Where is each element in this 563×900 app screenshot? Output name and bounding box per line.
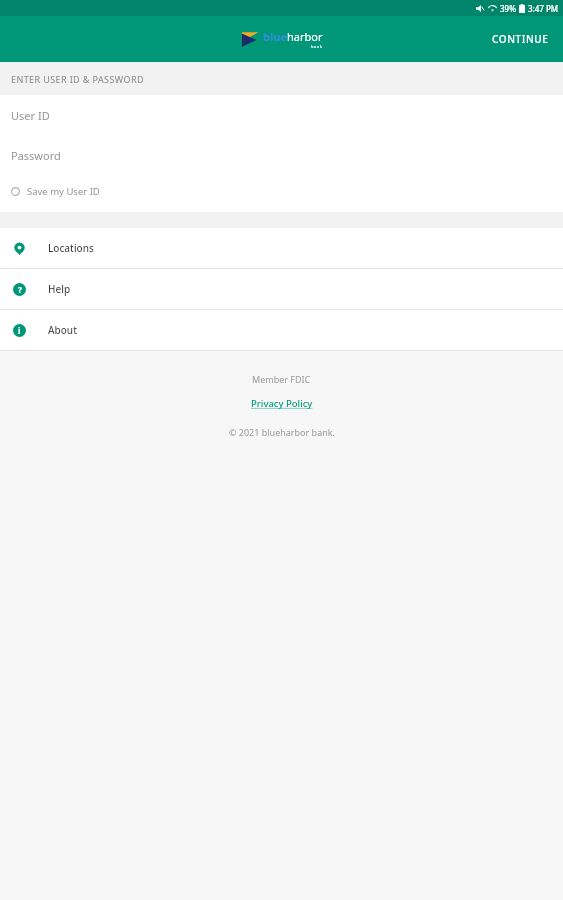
staticText: CONTINUE — [492, 32, 549, 46]
button[interactable]: Privacy Policy — [251, 397, 313, 410]
button[interactable]: Password — [0, 135, 563, 175]
staticText: Member FDIC — [252, 373, 311, 385]
staticText: About — [48, 323, 77, 337]
staticText: Privacy Policy — [251, 397, 313, 410]
staticText: Locations — [48, 241, 94, 255]
staticText: Help — [48, 282, 71, 296]
staticText: © 2021 blueharbor bank. — [229, 426, 335, 438]
staticText: blue — [263, 29, 287, 44]
staticText: Save my User ID — [27, 185, 100, 198]
button[interactable]: CONTINUE — [478, 20, 563, 58]
staticText: 3:47 PM — [528, 3, 559, 14]
button[interactable]: Save my User ID — [0, 175, 563, 212]
staticText: Password — [11, 148, 61, 163]
button[interactable]: ? — [0, 269, 563, 309]
staticText: ? — [18, 284, 22, 295]
button[interactable]: i — [0, 310, 563, 350]
staticText: i — [18, 325, 21, 336]
staticText: 39% — [500, 3, 516, 14]
staticText: harbor — [287, 29, 323, 44]
staticText: User ID — [11, 108, 50, 123]
button[interactable]: Locations — [0, 228, 563, 268]
staticText: bank — [311, 44, 323, 49]
staticText: ENTER USER ID & PASSWORD — [11, 73, 144, 85]
button[interactable]: User ID — [0, 95, 563, 135]
